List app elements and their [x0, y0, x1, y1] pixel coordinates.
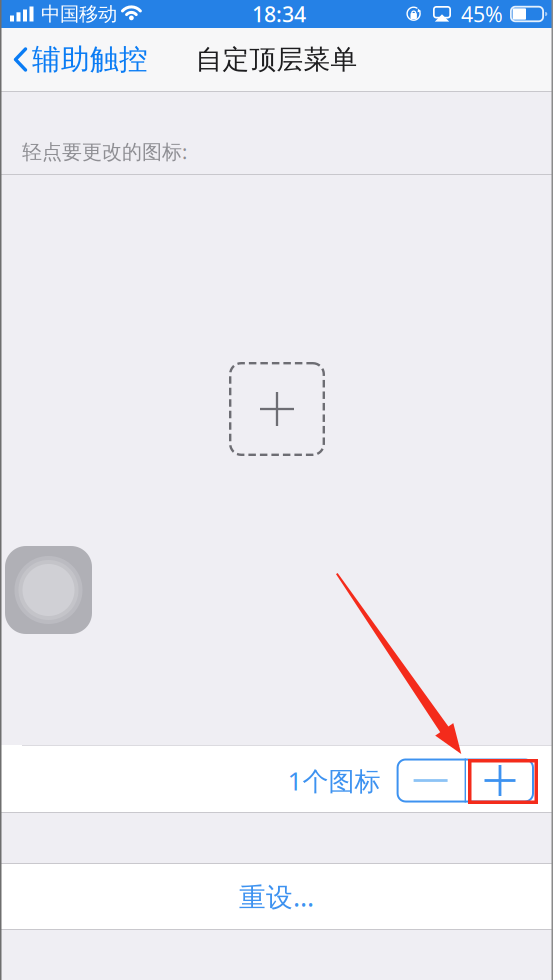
staticText: 重设... [239, 878, 314, 915]
button[interactable]: Add icon [466, 758, 534, 802]
staticText: 轻点要更改的图标: [22, 138, 187, 165]
button[interactable]: 辅助触控 [0, 32, 158, 86]
staticText: 自定顶层菜单 [195, 43, 357, 76]
button[interactable]: 重设... [0, 864, 553, 929]
staticText: 18:34 [252, 0, 306, 28]
button[interactable]: Remove icon [397, 758, 465, 802]
staticText: 45% [461, 0, 503, 28]
button[interactable]: Add icon [229, 362, 325, 456]
staticText: 辅助触控 [32, 41, 148, 77]
staticText: 1个图标 [288, 763, 381, 798]
staticText: 中国移动 [41, 2, 117, 26]
